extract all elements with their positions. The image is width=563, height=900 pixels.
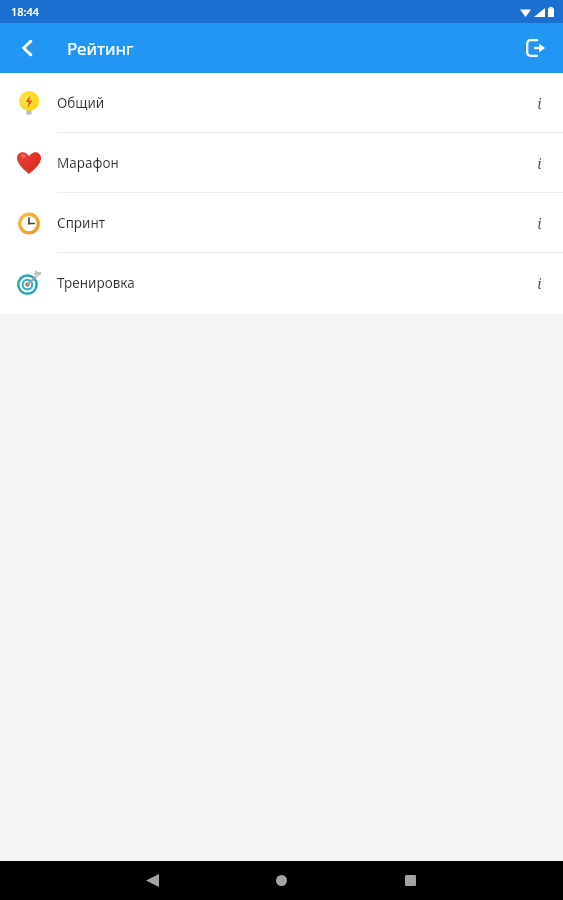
- staticText: Общий: [57, 94, 105, 112]
- button[interactable]: Recent apps: [388, 861, 432, 900]
- button[interactable]: Спринт: [0, 193, 563, 253]
- button[interactable]: Общий: [0, 73, 563, 133]
- staticText: i: [537, 214, 542, 233]
- staticText: i: [537, 94, 542, 113]
- button[interactable]: Logout: [507, 23, 563, 73]
- button[interactable]: Марафон: [0, 133, 563, 193]
- staticText: 18:44: [11, 4, 40, 19]
- staticText: i: [537, 274, 542, 293]
- staticText: Тренировка: [57, 274, 135, 292]
- staticText: Рейтинг: [67, 37, 134, 60]
- button[interactable]: Back: [130, 861, 174, 900]
- staticText: i: [537, 154, 542, 173]
- staticText: Спринт: [57, 214, 105, 232]
- button[interactable]: Home: [259, 861, 303, 900]
- staticText: Марафон: [57, 154, 119, 172]
- button[interactable]: Тренировка: [0, 253, 563, 313]
- button[interactable]: Back: [0, 23, 56, 73]
